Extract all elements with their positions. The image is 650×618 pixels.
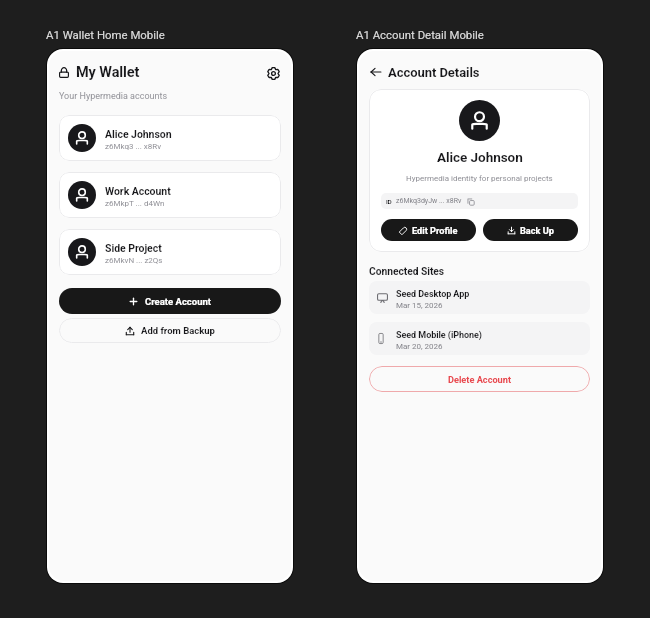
staticText: Back Up xyxy=(520,225,554,236)
staticText: A1 Wallet Home Mobile xyxy=(46,28,165,41)
staticText: z6MkvN ... z2Qs xyxy=(105,256,163,265)
button[interactable]: Seed Mobile (iPhone) xyxy=(369,322,590,355)
staticText: z6MkpT ... d4Wn xyxy=(105,199,165,208)
staticText: Seed Desktop App xyxy=(396,289,470,300)
button[interactable]: Back Up xyxy=(483,219,578,241)
staticText: Create Account xyxy=(145,296,212,307)
staticText: Edit Profile xyxy=(412,225,458,236)
staticText: Mar 15, 2026 xyxy=(396,301,443,310)
button[interactable]: Alice Johnson xyxy=(59,115,281,161)
staticText: ID xyxy=(386,198,392,205)
button[interactable]: Add from Backup xyxy=(59,318,281,343)
button[interactable]: Settings xyxy=(265,65,281,81)
button[interactable]: Edit Profile xyxy=(381,219,476,241)
staticText: Alice Johnson xyxy=(105,128,172,140)
staticText: Hypermedia identity for personal project… xyxy=(406,174,553,183)
button[interactable]: Back xyxy=(369,65,383,79)
staticText: z6Mkq3dyJw ... x8Rv xyxy=(396,197,462,205)
staticText: A1 Account Detail Mobile xyxy=(356,28,484,41)
button[interactable]: Seed Desktop App xyxy=(369,281,590,314)
staticText: Your Hypermedia accounts xyxy=(59,91,168,102)
staticText: Connected Sites xyxy=(369,265,445,277)
staticText: Add from Backup xyxy=(141,325,215,336)
staticText: Account Details xyxy=(388,65,480,80)
button[interactable]: Delete Account xyxy=(369,366,590,392)
staticText: My Wallet xyxy=(76,64,140,81)
staticText: Seed Mobile (iPhone) xyxy=(396,330,482,341)
staticText: Alice Johnson xyxy=(437,149,523,165)
button[interactable]: Create Account xyxy=(59,288,281,314)
staticText: z6Mkq3 ... x8Rv xyxy=(105,142,162,151)
staticText: Work Account xyxy=(105,185,171,197)
staticText: Delete Account xyxy=(448,374,512,385)
staticText: Mar 20, 2026 xyxy=(396,342,443,351)
button[interactable]: Work Account xyxy=(59,172,281,218)
staticText: Side Project xyxy=(105,242,162,254)
button[interactable]: Copy ID xyxy=(466,197,475,206)
button[interactable]: Side Project xyxy=(59,229,281,275)
